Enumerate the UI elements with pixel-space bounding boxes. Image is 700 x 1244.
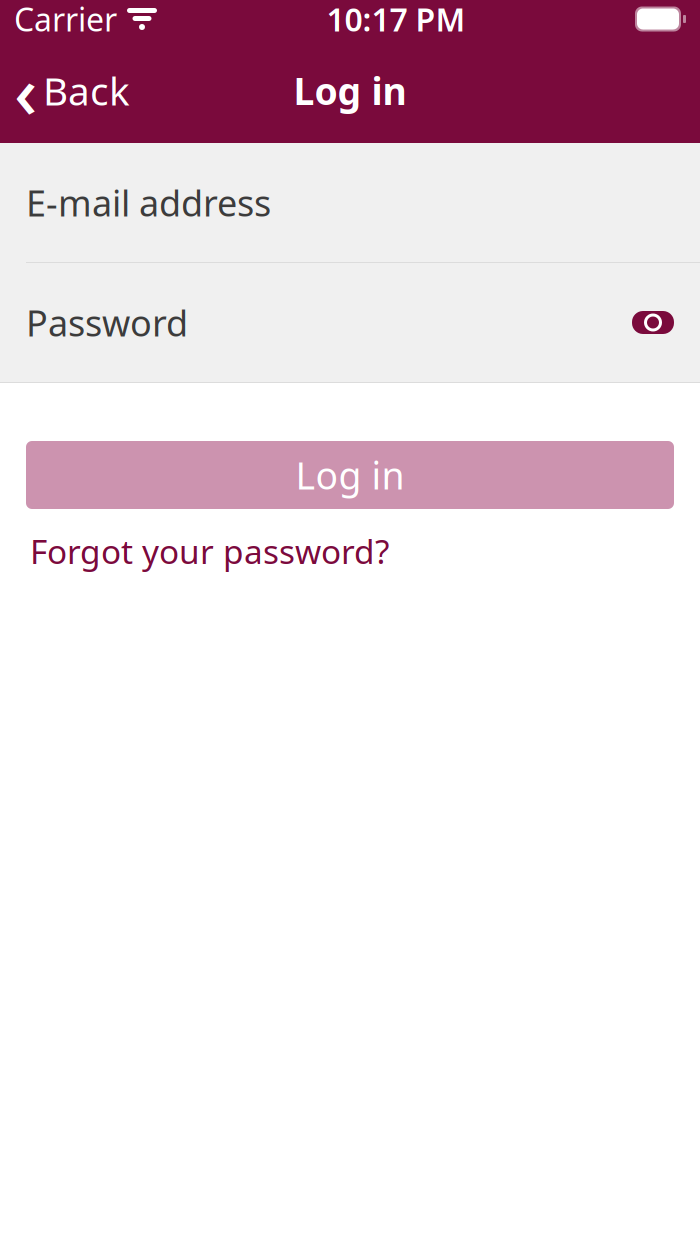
- button[interactable]: Log in: [26, 441, 674, 509]
- staticText: Log in: [295, 450, 404, 500]
- staticText: Back: [43, 65, 130, 116]
- staticText: ‹: [14, 43, 37, 138]
- button[interactable]: Password: [0, 263, 700, 382]
- staticText: Password: [26, 299, 188, 346]
- button[interactable]: Forgot your password?: [26, 521, 393, 581]
- staticText: Forgot your password?: [30, 529, 389, 573]
- button[interactable]: ‹: [0, 52, 146, 128]
- staticText: 10:17 PM: [326, 0, 465, 40]
- staticText: E-mail address: [26, 179, 271, 226]
- staticText: Log in: [293, 66, 406, 115]
- button[interactable]: E-mail address: [0, 143, 700, 262]
- staticText: Carrier: [14, 0, 117, 40]
